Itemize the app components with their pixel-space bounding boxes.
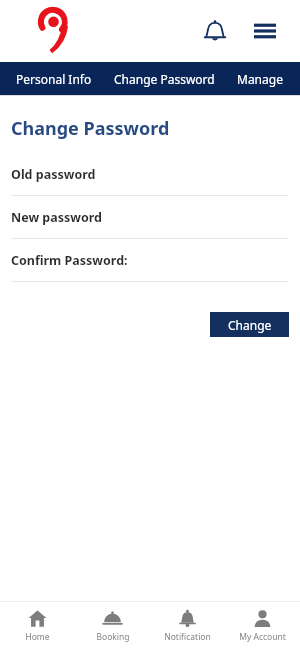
button[interactable]: New password — [0, 196, 300, 239]
staticText: Home — [25, 631, 50, 643]
button[interactable]: Old password — [0, 153, 300, 196]
button[interactable]: Confirm Password: — [0, 239, 300, 282]
staticText: Change — [228, 317, 272, 333]
button[interactable]: Manage — [237, 62, 283, 95]
button[interactable]: Change Password — [114, 62, 215, 95]
staticText: Old password — [11, 166, 96, 183]
staticText: My Account — [239, 631, 286, 643]
button[interactable]: Notifications — [194, 10, 236, 52]
button[interactable]: Home — [0, 602, 75, 650]
button[interactable]: Notification — [150, 602, 225, 650]
button[interactable]: Menu — [244, 10, 286, 52]
staticText: Change Password — [11, 116, 170, 141]
button[interactable]: Personal Info — [16, 62, 92, 95]
button[interactable]: Booking — [75, 602, 150, 650]
staticText: Manage — [237, 71, 283, 87]
button[interactable]: Change — [210, 312, 289, 337]
staticText: Confirm Password: — [11, 252, 128, 269]
staticText: Notification — [164, 631, 211, 643]
staticText: Personal Info — [16, 71, 92, 87]
button[interactable]: My Account — [225, 602, 300, 650]
staticText: Booking — [96, 631, 130, 643]
staticText: New password — [11, 209, 103, 226]
staticText: Change Password — [114, 71, 215, 87]
button[interactable]: TripYah home — [8, 8, 88, 54]
